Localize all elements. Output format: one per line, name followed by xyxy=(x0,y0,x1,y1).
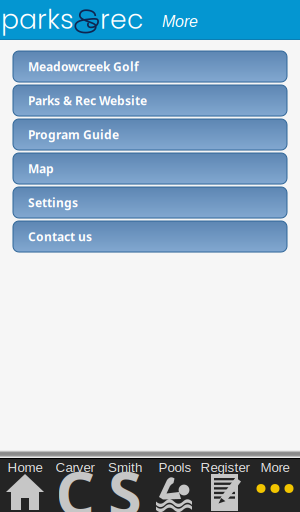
button[interactable]: Contact us xyxy=(13,221,287,252)
staticText: C xyxy=(55,451,94,512)
staticText: rec xyxy=(100,1,143,38)
button[interactable]: More xyxy=(143,0,206,39)
staticText: Carver xyxy=(55,460,94,475)
staticText: More xyxy=(162,13,198,30)
staticText: Contact us xyxy=(28,228,92,245)
button[interactable]: Carver xyxy=(50,459,100,512)
staticText: Pools xyxy=(158,460,191,475)
button[interactable]: Program Guide xyxy=(13,119,287,150)
button[interactable]: Meadowcreek Golf xyxy=(13,51,287,82)
staticText: Register xyxy=(200,460,249,475)
staticText: Map xyxy=(28,160,54,177)
button[interactable]: Map xyxy=(13,153,287,184)
staticText: More xyxy=(260,460,289,475)
button[interactable]: Home xyxy=(0,459,50,512)
staticText: Program Guide xyxy=(28,126,119,143)
staticText: S xyxy=(108,451,142,512)
staticText: Smith xyxy=(108,460,142,475)
staticText: Meadowcreek Golf xyxy=(28,58,139,75)
button[interactable]: Parks & Rec Website xyxy=(13,85,287,116)
staticText: Parks & Rec Website xyxy=(28,92,147,109)
button[interactable]: Settings xyxy=(13,187,287,218)
button[interactable]: Pools xyxy=(150,459,200,512)
staticText: Home xyxy=(7,460,42,475)
button[interactable]: More xyxy=(250,459,300,512)
button[interactable]: Smith xyxy=(100,459,150,512)
staticText: Settings xyxy=(28,194,78,211)
staticText: parks xyxy=(1,1,74,38)
button[interactable]: Register xyxy=(200,459,250,512)
